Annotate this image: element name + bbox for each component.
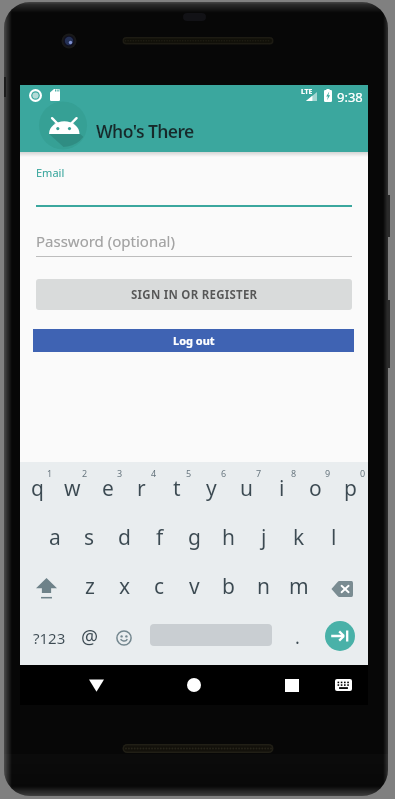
- staticText: y: [206, 474, 217, 503]
- button[interactable]: ?123: [20, 613, 78, 662]
- button[interactable]: c: [142, 564, 177, 613]
- staticText: o: [309, 474, 322, 503]
- staticText: m: [289, 572, 309, 601]
- button[interactable]: p: [333, 466, 368, 515]
- button[interactable]: a: [37, 515, 72, 564]
- button[interactable]: m: [281, 564, 316, 613]
- button[interactable]: w: [55, 466, 90, 515]
- button[interactable]: y: [194, 466, 229, 515]
- staticText: e: [102, 474, 114, 503]
- button[interactable]: o: [298, 466, 333, 515]
- button[interactable]: k: [281, 515, 316, 564]
- staticText: 8: [291, 467, 297, 479]
- staticText: Password (optional): [36, 231, 175, 251]
- button[interactable]: i: [264, 466, 299, 515]
- staticText: 9:38: [337, 88, 363, 106]
- button[interactable]: z: [72, 564, 107, 613]
- staticText: s: [84, 523, 95, 552]
- staticText: w: [64, 474, 81, 503]
- staticText: l: [331, 523, 337, 552]
- button[interactable]: d: [107, 515, 142, 564]
- staticText: 0: [360, 467, 366, 479]
- button[interactable]: r: [124, 466, 159, 515]
- staticText: c: [154, 572, 165, 601]
- staticText: v: [189, 572, 200, 601]
- button[interactable]: SIGN IN OR REGISTER: [36, 279, 352, 310]
- staticText: Log out: [173, 333, 215, 348]
- staticText: j: [261, 523, 267, 552]
- staticText: n: [257, 572, 270, 601]
- staticText: x: [119, 572, 131, 601]
- staticText: z: [85, 572, 95, 601]
- staticText: SIGN IN OR REGISTER: [131, 287, 258, 303]
- staticText: 2: [82, 467, 88, 479]
- staticText: @: [81, 624, 99, 650]
- button[interactable]: v: [177, 564, 212, 613]
- button[interactable]: t: [159, 466, 194, 515]
- staticText: u: [240, 474, 253, 503]
- button[interactable]: Shift: [20, 564, 72, 613]
- staticText: Email: [36, 165, 65, 180]
- button[interactable]: h: [211, 515, 246, 564]
- button[interactable]: g: [177, 515, 212, 564]
- staticText: 9: [325, 467, 331, 479]
- button[interactable]: f: [142, 515, 177, 564]
- staticText: b: [222, 572, 235, 601]
- button[interactable]: Log out: [33, 329, 354, 352]
- button[interactable]: Emoji: [105, 613, 143, 662]
- button[interactable]: q: [20, 466, 55, 515]
- staticText: 5: [186, 467, 192, 479]
- button[interactable]: Recents: [267, 665, 317, 705]
- button[interactable]: Back: [71, 665, 121, 705]
- button[interactable]: Keyboard: [323, 665, 364, 705]
- staticText: t: [173, 474, 181, 503]
- button[interactable]: Backspace: [316, 564, 368, 613]
- button[interactable]: e: [90, 466, 125, 515]
- button[interactable]: u: [229, 466, 264, 515]
- button[interactable]: n: [246, 564, 281, 613]
- button[interactable]: .: [278, 613, 316, 662]
- button[interactable]: b: [211, 564, 246, 613]
- button[interactable]: Next: [325, 621, 355, 651]
- staticText: p: [344, 474, 357, 503]
- staticText: k: [293, 523, 305, 552]
- staticText: Who's There: [96, 119, 194, 143]
- staticText: 6: [221, 467, 227, 479]
- staticText: 3: [117, 467, 123, 479]
- staticText: 7: [256, 467, 262, 479]
- staticText: q: [31, 474, 44, 503]
- button[interactable]: x: [107, 564, 142, 613]
- staticText: ?123: [33, 628, 66, 648]
- button[interactable]: j: [246, 515, 281, 564]
- staticText: 1: [47, 467, 53, 479]
- staticText: g: [188, 523, 201, 552]
- staticText: i: [279, 474, 285, 503]
- staticText: LTE: [301, 87, 313, 97]
- staticText: h: [222, 523, 235, 552]
- staticText: f: [156, 523, 164, 552]
- button[interactable]: @: [71, 613, 109, 662]
- staticText: d: [118, 523, 131, 552]
- button[interactable]: Home: [169, 665, 219, 705]
- staticText: 4: [151, 467, 157, 479]
- staticText: .: [295, 625, 300, 650]
- staticText: a: [49, 523, 61, 552]
- button[interactable]: s: [72, 515, 107, 564]
- button[interactable]: l: [316, 515, 351, 564]
- staticText: r: [137, 474, 146, 503]
